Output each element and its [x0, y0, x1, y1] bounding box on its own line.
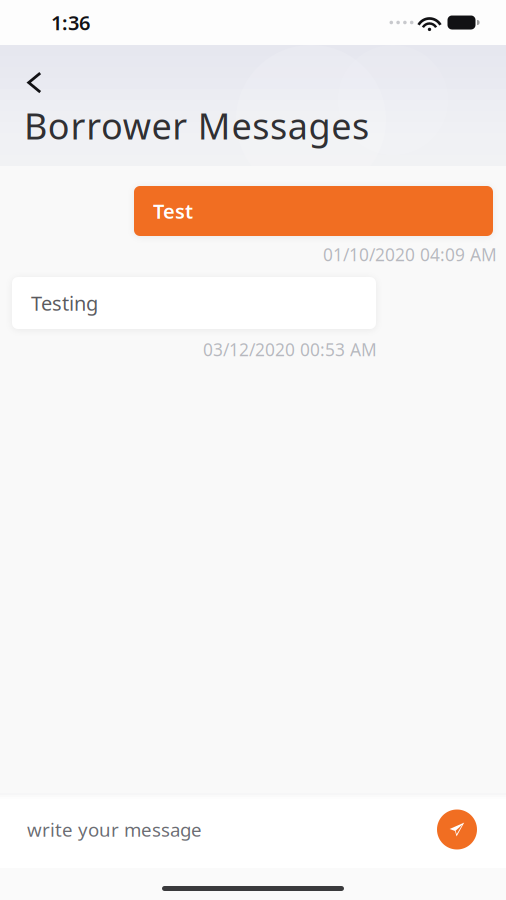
staticText: Testing	[31, 290, 98, 316]
staticText: write your message	[27, 817, 202, 842]
staticText: 03/12/2020 00:53 AM	[203, 338, 377, 361]
staticText: 1:36	[51, 9, 90, 36]
button[interactable]: Back	[0, 44, 60, 102]
staticText: Test	[153, 198, 193, 224]
staticText: Borrower Messages	[24, 102, 369, 149]
staticText: 01/10/2020 04:09 AM	[323, 243, 497, 266]
button[interactable]: Send	[428, 796, 486, 862]
